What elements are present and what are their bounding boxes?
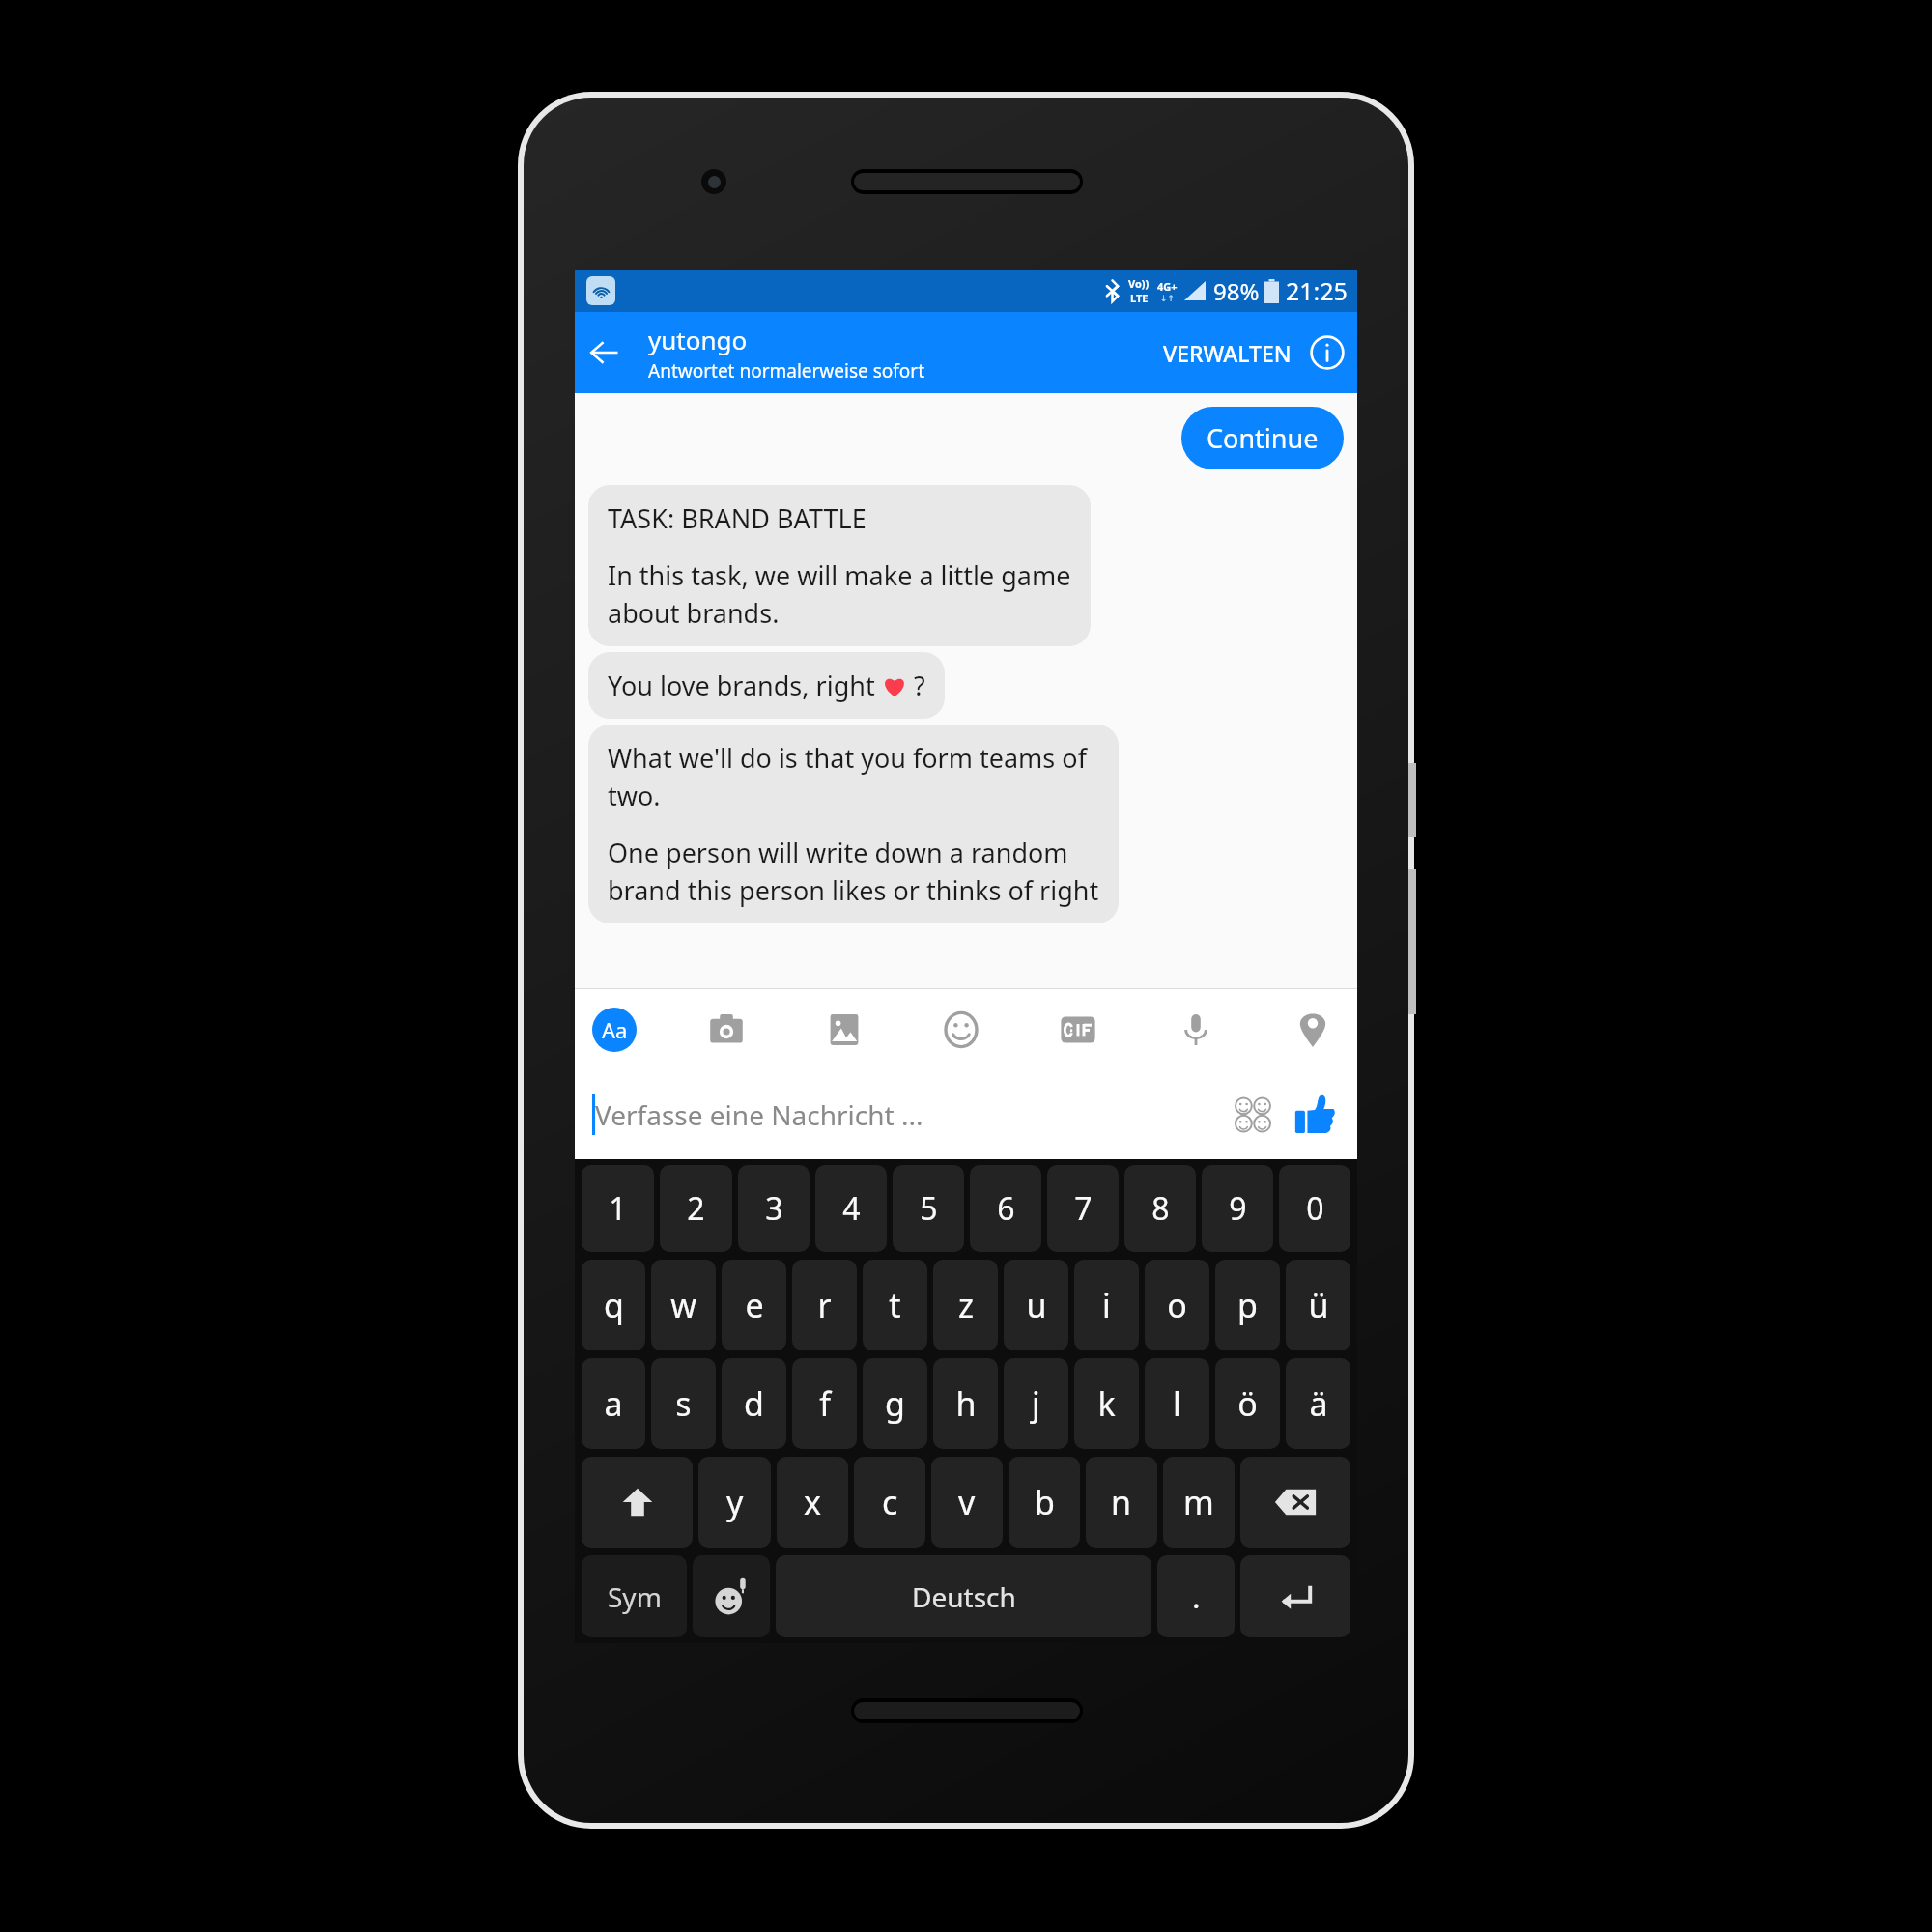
button[interactable]: You love brands, right [588, 652, 945, 719]
staticText: m [1183, 1480, 1214, 1524]
button[interactable]: 8 [1124, 1165, 1196, 1252]
button[interactable]: Send like [1290, 1090, 1340, 1140]
staticText: ä [1309, 1381, 1328, 1426]
button[interactable]: u [1004, 1260, 1068, 1350]
staticText: k [1097, 1381, 1116, 1426]
button[interactable]: y [698, 1457, 771, 1548]
staticText: VERWALTEN [1163, 338, 1292, 368]
staticText: 8 [1151, 1187, 1170, 1230]
button[interactable]: p [1215, 1260, 1280, 1350]
staticText: c [882, 1480, 898, 1524]
button[interactable]: g [863, 1358, 927, 1449]
staticText: a [604, 1381, 623, 1426]
button[interactable]: j [1004, 1358, 1068, 1449]
button[interactable]: 1 [582, 1165, 654, 1252]
staticText: i [1102, 1283, 1111, 1327]
button[interactable]: Shift [582, 1457, 693, 1548]
button[interactable]: n [1086, 1457, 1157, 1548]
button[interactable]: x [777, 1457, 848, 1548]
staticText: Antwortet normalerweise sofort [648, 358, 925, 384]
button[interactable]: Text formatting [592, 1008, 637, 1052]
staticText: 0 [1306, 1187, 1324, 1230]
staticText: y [726, 1480, 744, 1524]
button[interactable]: d [722, 1358, 786, 1449]
button[interactable]: r [792, 1260, 857, 1350]
button[interactable]: 4 [815, 1165, 887, 1252]
staticText: 4G+ [1157, 279, 1178, 294]
staticText: ↓↑ [1160, 294, 1176, 303]
staticText: 4 [842, 1187, 861, 1230]
button[interactable]: o [1145, 1260, 1209, 1350]
button[interactable]: 6 [970, 1165, 1041, 1252]
button[interactable]: z [933, 1260, 998, 1350]
button[interactable]: s [651, 1358, 716, 1449]
staticText: brand this person likes or thinks of rig… [608, 872, 1099, 908]
button[interactable]: Sym [582, 1555, 687, 1637]
staticText: 9 [1229, 1187, 1247, 1230]
button[interactable]: Camera [699, 1003, 753, 1057]
button[interactable]: Backspace [1240, 1457, 1350, 1548]
button[interactable]: 0 [1279, 1165, 1350, 1252]
button[interactable]: Continue [1181, 407, 1344, 469]
button[interactable]: GIF [1051, 1003, 1105, 1057]
button[interactable]: Voice input and emoji [693, 1555, 770, 1637]
button[interactable]: Deutsch [776, 1555, 1151, 1637]
button[interactable]: Enter [1240, 1555, 1350, 1637]
button[interactable]: 2 [660, 1165, 732, 1252]
staticText: yutongo [648, 323, 748, 356]
button[interactable]: v [931, 1457, 1003, 1548]
button[interactable]: Verfasse eine Nachricht ... [595, 1096, 1228, 1133]
staticText: 7 [1074, 1187, 1093, 1230]
button[interactable]: e [722, 1260, 786, 1350]
staticText: 2 [687, 1187, 705, 1230]
staticText: t [889, 1283, 901, 1327]
staticText: Verfasse eine Nachricht ... [595, 1096, 923, 1133]
button[interactable]: h [933, 1358, 998, 1449]
button[interactable]: q [582, 1260, 645, 1350]
button[interactable]: 7 [1047, 1165, 1119, 1252]
button[interactable]: t [863, 1260, 927, 1350]
staticText: 6 [997, 1187, 1015, 1230]
staticText: 1 [609, 1187, 627, 1230]
button[interactable]: yutongo [648, 323, 1157, 384]
button[interactable]: c [854, 1457, 925, 1548]
button[interactable]: m [1163, 1457, 1235, 1548]
staticText: d [744, 1381, 764, 1426]
button[interactable]: k [1074, 1358, 1139, 1449]
staticText: Sym [608, 1578, 662, 1615]
staticText: Deutsch [912, 1578, 1016, 1615]
button[interactable]: w [651, 1260, 716, 1350]
staticText: x [804, 1480, 821, 1524]
button[interactable]: f [792, 1358, 857, 1449]
button[interactable]: . [1157, 1555, 1235, 1637]
button[interactable]: l [1145, 1358, 1209, 1449]
staticText: z [958, 1283, 974, 1327]
button[interactable]: Emoji [1228, 1090, 1278, 1140]
button[interactable]: VERWALTEN [1157, 338, 1297, 368]
button[interactable]: Back [575, 323, 635, 383]
staticText: w [670, 1283, 696, 1327]
button[interactable]: ü [1286, 1260, 1350, 1350]
staticText: 5 [920, 1187, 938, 1230]
button[interactable]: 3 [738, 1165, 810, 1252]
button[interactable]: 9 [1202, 1165, 1273, 1252]
button[interactable]: Stickers [934, 1003, 988, 1057]
button[interactable]: Info [1297, 323, 1357, 383]
button[interactable]: Voice message [1169, 1003, 1223, 1057]
button[interactable]: Location [1286, 1003, 1340, 1057]
staticText: Aa [602, 1015, 628, 1044]
button[interactable]: What we'll do is that you form teams of [588, 724, 1119, 923]
button[interactable]: 5 [893, 1165, 964, 1252]
button[interactable]: Gallery [817, 1003, 871, 1057]
button[interactable]: TASK: BRAND BATTLE [588, 485, 1091, 646]
button[interactable]: ö [1215, 1358, 1280, 1449]
button[interactable]: b [1009, 1457, 1080, 1548]
staticText: You love brands, right [608, 668, 882, 703]
staticText: 98% [1213, 275, 1260, 307]
staticText: two. [608, 778, 661, 813]
button[interactable]: ä [1286, 1358, 1350, 1449]
button[interactable]: i [1074, 1260, 1139, 1350]
staticText: Continue [1207, 420, 1319, 456]
button[interactable]: a [582, 1358, 645, 1449]
staticText: One person will write down a random [608, 835, 1068, 870]
